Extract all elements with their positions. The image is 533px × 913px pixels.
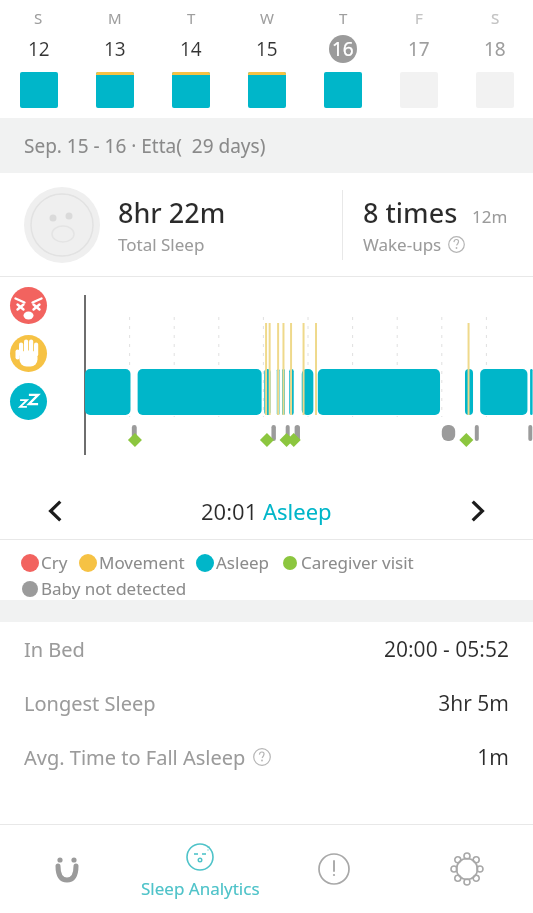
staticText: 8 times <box>363 194 458 231</box>
staticText: Asleep <box>216 551 270 574</box>
staticText: Baby not detected <box>41 577 187 600</box>
button[interactable]: W <box>229 0 305 118</box>
button[interactable]: T <box>153 0 229 118</box>
button[interactable]: M <box>77 0 153 118</box>
staticText: Caregiver visit <box>301 551 414 574</box>
button[interactable]: Wake-ups info <box>448 236 465 253</box>
button[interactable]: Settings <box>400 825 533 913</box>
staticText: 15 <box>256 36 278 62</box>
button[interactable]: Previous <box>0 482 110 540</box>
button[interactable]: T <box>305 0 381 118</box>
button[interactable]: Home <box>0 825 134 913</box>
button[interactable]: F <box>381 0 457 118</box>
staticText: 14 <box>180 36 202 62</box>
staticText: M <box>108 8 122 28</box>
staticText: W <box>260 8 274 28</box>
button[interactable]: Next <box>423 482 533 540</box>
staticText: Wake-ups <box>363 233 442 256</box>
staticText: 20:01 <box>201 496 263 526</box>
staticText: 16 <box>332 36 354 62</box>
staticText: Avg. Time to Fall Asleep <box>24 744 246 771</box>
staticText: 13 <box>104 36 126 62</box>
button[interactable]: In Bed <box>0 622 533 676</box>
staticText: Sleep Analytics <box>141 877 260 900</box>
staticText: S <box>491 8 500 28</box>
button[interactable]: S <box>0 0 77 118</box>
staticText: 12m <box>472 205 508 228</box>
staticText: Total Sleep <box>118 233 205 256</box>
staticText: 12 <box>28 36 50 62</box>
staticText: In Bed <box>24 636 85 663</box>
staticText: Sep. 15 - 16 · Etta( 29 days) <box>24 133 266 159</box>
staticText: Asleep <box>263 496 332 526</box>
staticText: 3hr 5m <box>438 689 509 718</box>
staticText: 18 <box>484 36 506 62</box>
staticText: T <box>339 8 348 28</box>
staticText: S <box>34 8 43 28</box>
button[interactable]: S <box>457 0 533 118</box>
staticText: 8hr 22m <box>118 194 226 231</box>
staticText: 20:00 - 05:52 <box>383 635 509 664</box>
staticText: 17 <box>408 36 430 62</box>
staticText: 1m <box>477 743 509 772</box>
button[interactable]: Avg. Time to Fall Asleep <box>0 730 533 784</box>
staticText: Movement <box>99 551 185 574</box>
button[interactable]: Longest Sleep <box>0 676 533 730</box>
staticText: Cry <box>41 551 68 574</box>
button[interactable]: Sleep Analytics <box>134 825 267 913</box>
staticText: F <box>415 8 423 28</box>
staticText: Longest Sleep <box>24 690 156 717</box>
button[interactable]: Alerts <box>267 825 400 913</box>
staticText: T <box>187 8 196 28</box>
